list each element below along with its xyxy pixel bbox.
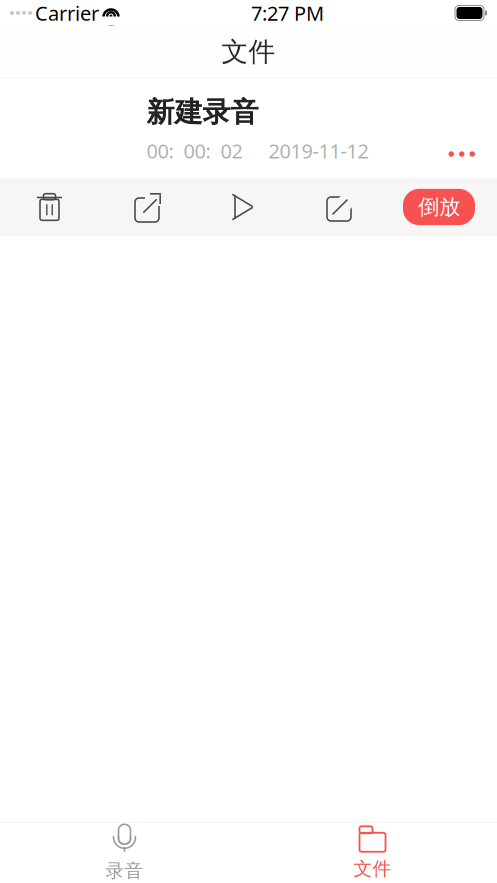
staticText: Carrier <box>35 0 99 26</box>
button[interactable]: More options <box>436 137 487 171</box>
button[interactable]: Play <box>195 178 291 236</box>
staticText: 新建录音 <box>146 95 258 129</box>
staticText: 7:27 PM <box>251 0 324 26</box>
button[interactable]: Share <box>99 178 195 236</box>
button[interactable]: Edit <box>291 178 387 236</box>
staticText: 文件 <box>353 857 391 880</box>
staticText: 00: 00: 02 <box>146 137 242 164</box>
button[interactable]: Delete <box>0 178 99 236</box>
button[interactable]: 倒放 <box>403 189 475 225</box>
staticText: 2019-11-12 <box>268 137 368 164</box>
staticText: 倒放 <box>418 194 460 220</box>
staticText: 录音 <box>105 859 143 882</box>
staticText: 文件 <box>221 35 275 68</box>
button[interactable]: 文件 <box>248 823 496 883</box>
button[interactable]: 录音 <box>0 823 248 883</box>
